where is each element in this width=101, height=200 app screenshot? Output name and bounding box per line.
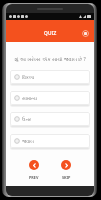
staticText: PREV xyxy=(29,175,39,180)
staticText: સામાન્ય xyxy=(22,96,37,101)
staticText: ઉત્તર xyxy=(22,117,32,122)
staticText: શું આ ખરેખર એક સાચો જવાબ છે ? xyxy=(10,56,90,63)
staticText: QUIZ xyxy=(44,30,57,37)
button[interactable]: જવાબ xyxy=(10,134,90,148)
button[interactable]: સામાન્ય xyxy=(10,91,90,105)
button[interactable]: Timer xyxy=(82,30,89,37)
button[interactable]: SKIP xyxy=(61,160,71,170)
button[interactable]: વિકલ્પ xyxy=(10,70,90,84)
staticText: વિકલ્પ xyxy=(22,75,35,80)
staticText: SKIP xyxy=(62,175,71,180)
staticText: જવાબ xyxy=(22,139,34,144)
button[interactable]: PREV xyxy=(29,160,39,170)
button[interactable]: ઉત્તર xyxy=(10,112,90,126)
